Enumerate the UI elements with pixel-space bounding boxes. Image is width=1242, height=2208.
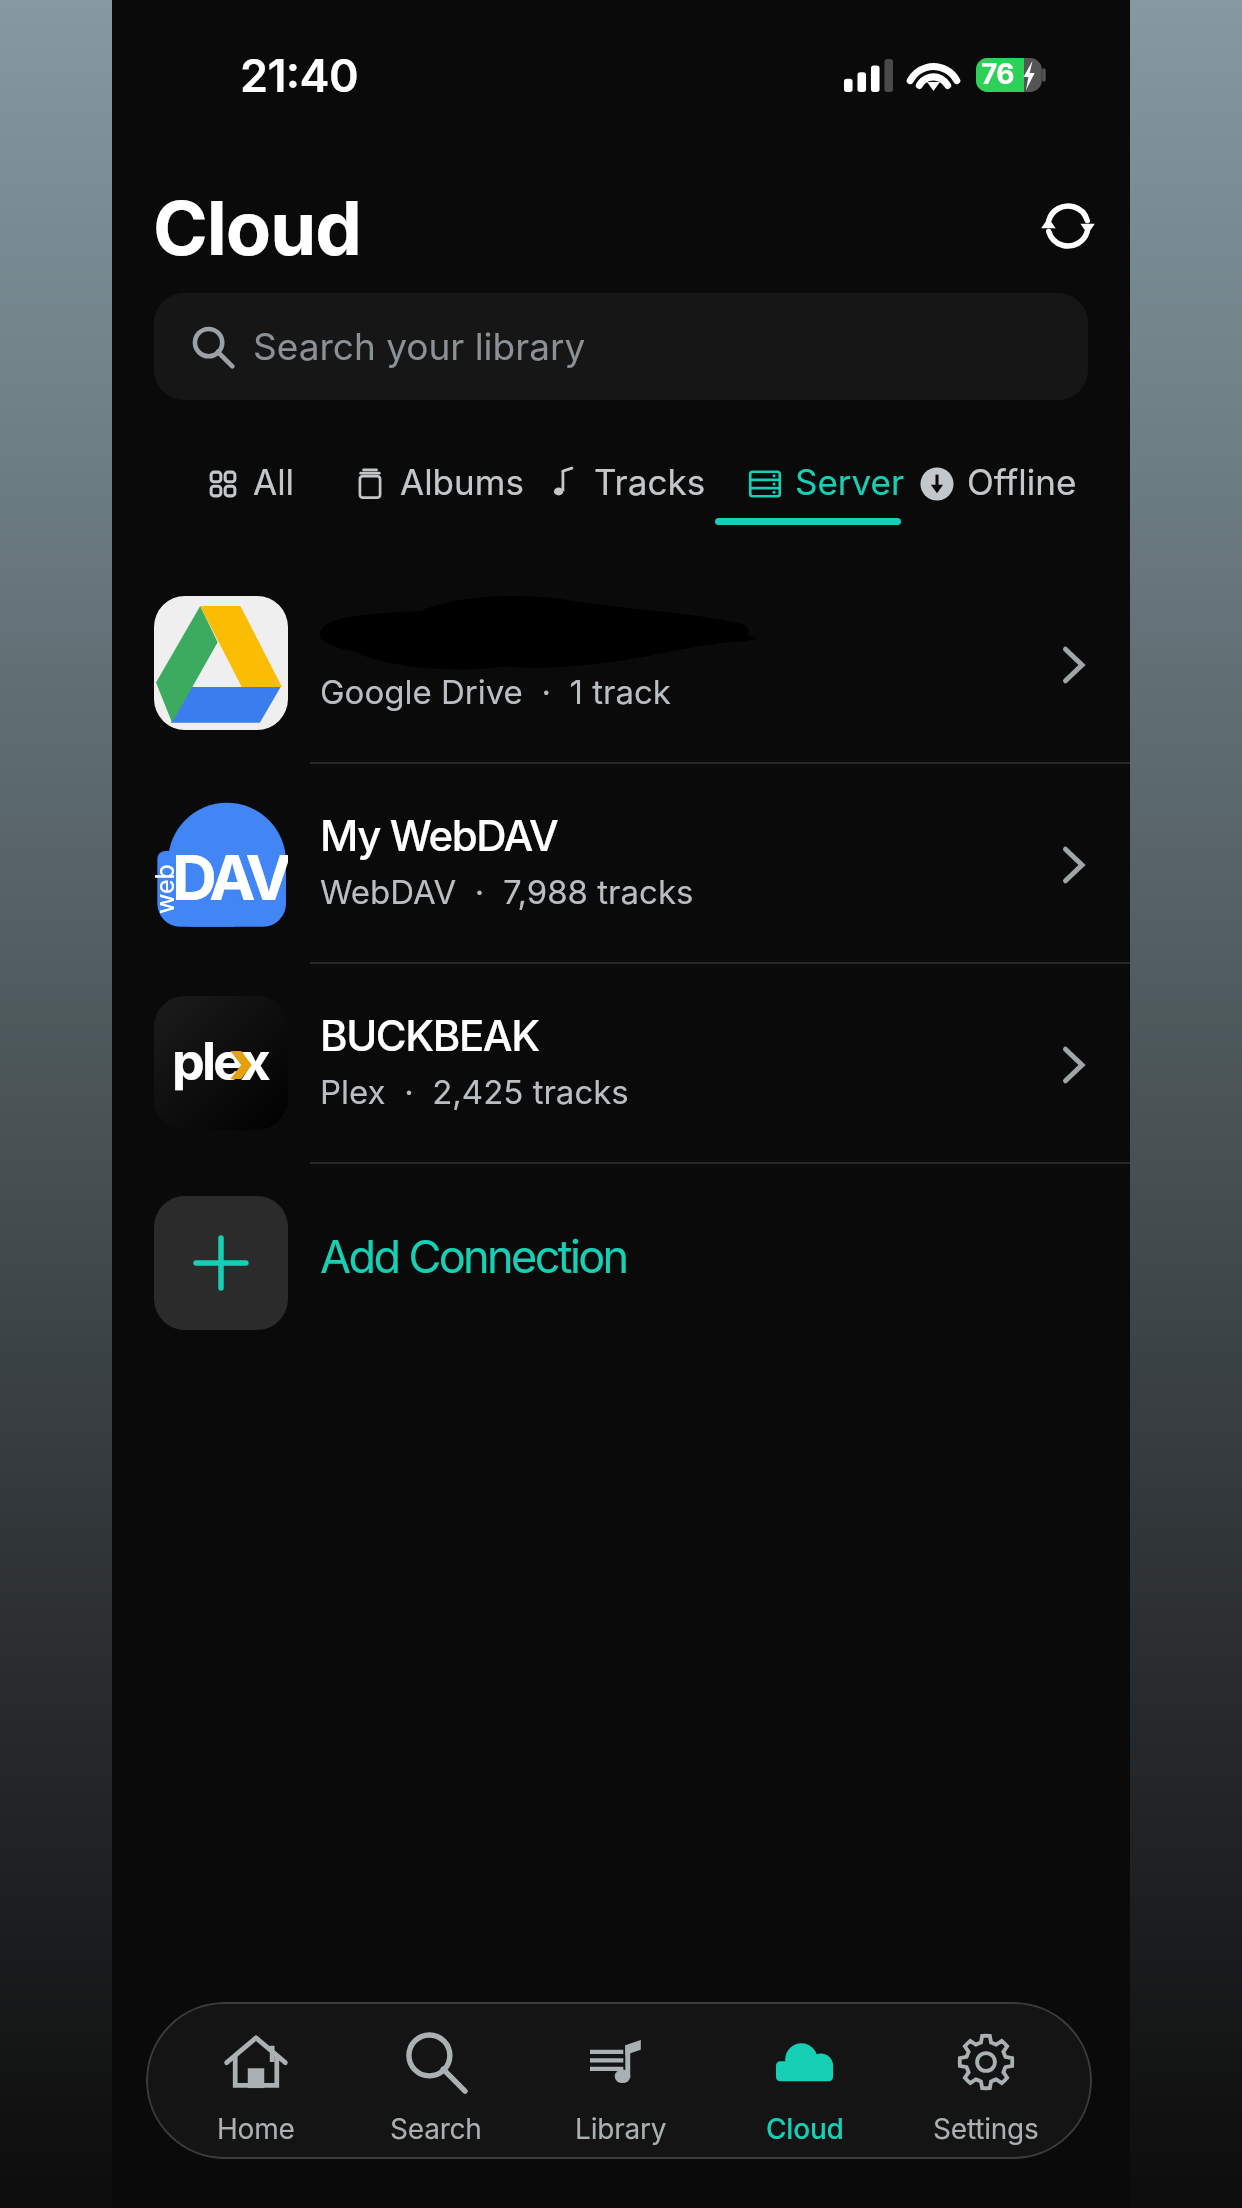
button[interactable]: Add Connection [112,1164,1130,1362]
staticText: web [154,864,180,914]
staticText: Server [795,461,905,503]
staticText: Home [217,2112,295,2146]
button[interactable]: Refresh [1018,176,1118,276]
staticText: Settings [933,2112,1039,2146]
staticText: BUCKBEAK [320,1010,539,1061]
staticText: Tracks [594,461,706,503]
staticText: Search [390,2112,482,2146]
staticText: My WebDAV [320,810,558,861]
button[interactable]: Library [541,2002,701,2159]
staticText: 76 [981,57,1015,91]
button[interactable]: Cloud [725,2002,885,2159]
staticText: Plex · 2,425 tracks [320,1072,629,1112]
staticText: Google Drive · 1 track [320,672,671,712]
button[interactable]: Search your library [154,293,1088,400]
staticText: WebDAV · 7,988 tracks [320,872,694,912]
staticText: Library [575,2112,667,2146]
staticText: Add Connection [320,1229,627,1283]
button[interactable]: All [205,461,295,503]
staticText: Cloud [766,2112,844,2146]
button[interactable]: plex [112,964,1130,1162]
staticText: Cloud [153,183,361,273]
staticText: Offline [967,461,1077,503]
staticText: 21:40 [240,48,359,102]
button[interactable]: Settings [906,2002,1066,2159]
button[interactable]: Search [356,2002,516,2159]
staticText: All [253,461,295,503]
staticText: DAV [172,840,287,915]
button[interactable]: Offline [919,461,1077,503]
button[interactable]: Albums [352,461,524,503]
button[interactable]: Tracks [546,461,706,503]
button[interactable]: Server [733,461,919,525]
button[interactable]: Google Drive · 1 track [112,564,1130,762]
button[interactable]: DAV [112,764,1130,962]
staticText: Search your library [253,324,586,369]
staticText: plex [172,1030,268,1093]
staticText: Albums [400,461,524,503]
button[interactable]: Home [176,2002,336,2159]
